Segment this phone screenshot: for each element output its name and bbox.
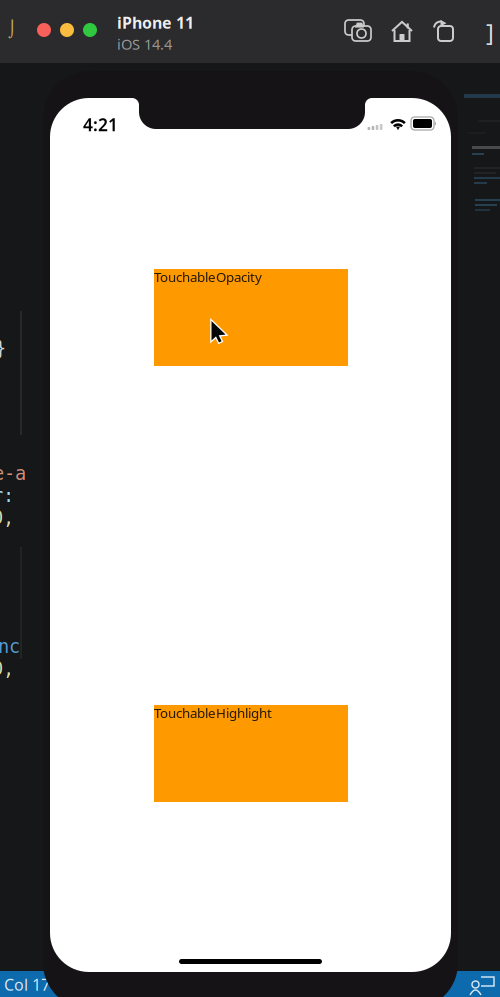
staticText: ] [486, 16, 494, 48]
staticText: 0, [0, 658, 14, 679]
staticText: e-a [0, 463, 26, 484]
button[interactable]: Home [392, 21, 412, 41]
staticText: iOS 14.4 [117, 34, 172, 54]
staticText: iPhone 11 [117, 12, 194, 33]
staticText: } [0, 338, 6, 359]
button[interactable]: TouchableOpacity [154, 269, 348, 366]
staticText: 0, [0, 507, 14, 528]
button[interactable]: TouchableHighlight [154, 705, 348, 802]
staticText: TouchableOpacity [154, 268, 262, 286]
staticText: ⌡ [8, 20, 16, 38]
staticText: Col 17 [4, 974, 50, 995]
staticText: 4:21 [83, 113, 118, 136]
button[interactable]: Rotate [434, 20, 454, 41]
staticText: nt [430, 974, 446, 995]
staticText: TouchableHighlight [154, 704, 272, 722]
button[interactable]: Screenshot [345, 20, 371, 41]
button[interactable]: Minimise window [60, 23, 74, 37]
staticText: unc [0, 636, 20, 657]
button[interactable]: Zoom window [83, 23, 97, 37]
button[interactable]: Close window [37, 23, 51, 37]
staticText: r: [0, 485, 14, 506]
